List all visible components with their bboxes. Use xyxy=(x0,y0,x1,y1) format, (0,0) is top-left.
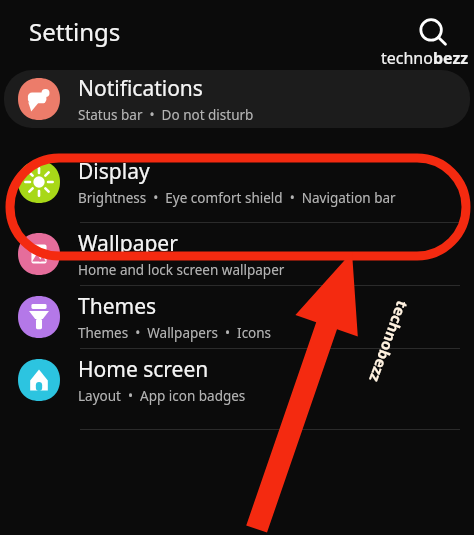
button[interactable]: Themes xyxy=(0,286,474,348)
staticText: Themes xyxy=(78,292,157,321)
button[interactable]: Display xyxy=(0,150,474,214)
button[interactable]: Search xyxy=(414,14,452,52)
button[interactable]: Notifications xyxy=(4,70,470,128)
staticText: Notifications xyxy=(78,74,203,103)
staticText: Layout • App icon badges xyxy=(78,387,246,405)
staticText: Home and lock screen wallpaper xyxy=(78,261,285,279)
staticText: Display xyxy=(78,157,150,186)
button[interactable]: Home screen xyxy=(0,349,474,411)
staticText: Home screen xyxy=(78,355,209,384)
staticText: technobezz xyxy=(381,47,469,69)
staticText: Themes • Wallpapers • Icons xyxy=(78,324,272,342)
staticText: Status bar • Do not disturb xyxy=(78,106,254,124)
staticText: technobezz xyxy=(365,298,413,386)
staticText: Wallpaper xyxy=(78,229,178,258)
staticText: Settings xyxy=(29,15,121,48)
button[interactable]: Wallpaper xyxy=(0,223,474,285)
staticText: Brightness • Eye comfort shield • Naviga… xyxy=(78,189,396,207)
